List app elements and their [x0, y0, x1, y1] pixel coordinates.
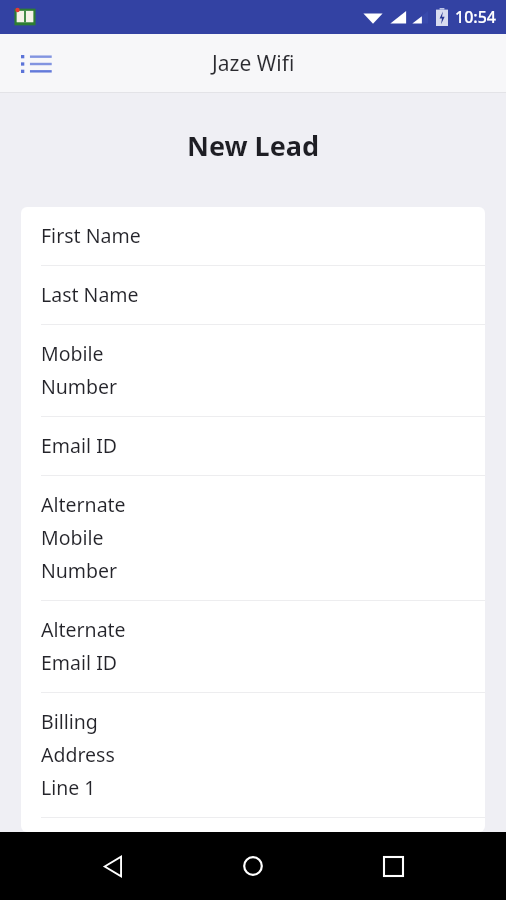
- button[interactable]: Open navigation menu: [14, 41, 60, 87]
- button[interactable]: Email ID: [21, 417, 485, 475]
- button[interactable]: Last Name: [21, 266, 485, 324]
- staticText: Billing Address Line 1: [41, 708, 115, 801]
- button[interactable]: Back: [86, 839, 140, 893]
- staticText: Email ID: [41, 432, 117, 459]
- button[interactable]: Alternate Email ID: [21, 601, 485, 692]
- staticText: 10:54: [455, 6, 496, 28]
- button[interactable]: First Name: [21, 207, 485, 265]
- staticText: New Lead: [0, 127, 506, 164]
- button[interactable]: Home: [226, 839, 280, 893]
- button[interactable]: Mobile Number: [21, 325, 485, 416]
- staticText: Alternate Mobile Number: [41, 491, 126, 584]
- button[interactable]: Billing Address Line 1: [21, 693, 485, 817]
- button[interactable]: Alternate Mobile Number: [21, 476, 485, 600]
- staticText: Mobile Number: [41, 340, 118, 400]
- staticText: First Name: [41, 222, 141, 249]
- staticText: Last Name: [41, 281, 139, 308]
- staticText: Jaze Wifi: [212, 49, 295, 78]
- staticText: Alternate Email ID: [41, 616, 126, 676]
- button[interactable]: Recent apps: [366, 839, 420, 893]
